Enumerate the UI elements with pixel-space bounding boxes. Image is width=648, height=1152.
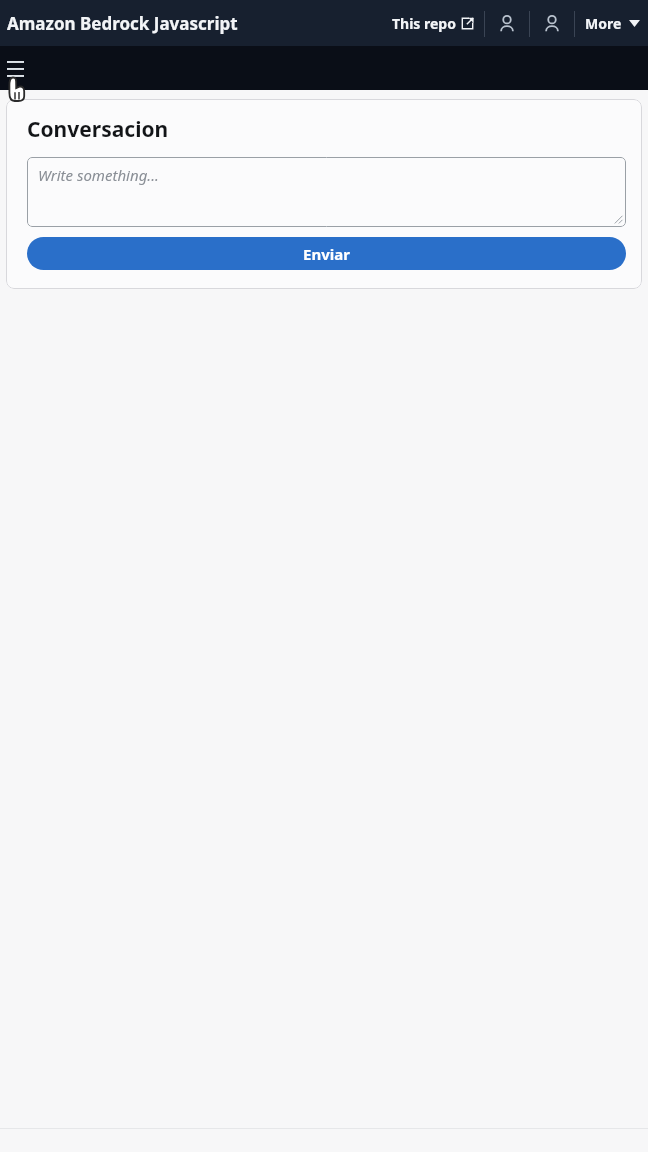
staticText: Conversacion <box>27 115 169 144</box>
staticText: Write something... <box>38 165 159 185</box>
staticText: This repo <box>392 14 456 33</box>
button[interactable]: Profile <box>530 8 574 39</box>
button[interactable]: Enviar <box>27 237 626 270</box>
button[interactable]: More <box>575 8 648 39</box>
staticText: Amazon Bedrock Javascript <box>7 12 238 35</box>
button[interactable]: Write something... <box>27 157 626 227</box>
staticText: Enviar <box>303 244 350 264</box>
staticText: More <box>585 14 622 33</box>
button[interactable]: This repo <box>382 8 484 39</box>
button[interactable]: Menu <box>0 51 34 85</box>
button[interactable]: Account <box>485 8 529 39</box>
